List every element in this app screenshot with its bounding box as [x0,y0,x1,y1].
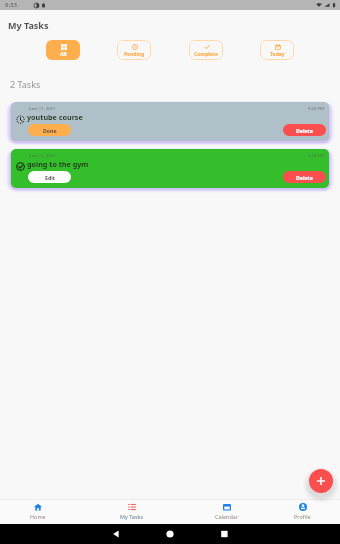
button[interactable]: Done [28,124,71,136]
staticText: Edit [45,174,55,181]
staticText: 9:32 PM [308,106,324,112]
staticText: My Tasks [8,19,49,31]
button[interactable]: June 11, 2021 [11,149,329,188]
button[interactable]: Profile [280,499,324,524]
staticText: Done [43,127,57,134]
button[interactable]: June 11, 2021 [11,102,329,141]
button[interactable]: Calendar [205,499,249,524]
staticText: June 11, 2021 [29,153,56,159]
staticText: going to the gym [27,159,89,169]
staticText: Pending [124,51,145,58]
staticText: Today [270,51,285,58]
staticText: youtube course [27,112,83,122]
staticText: Complete [194,51,219,58]
staticText: 9:32 PM [308,153,324,159]
staticText: All [60,51,67,58]
staticText: My Tasks [120,513,144,520]
button[interactable]: Pending [117,40,151,60]
button[interactable]: Delete [283,124,326,136]
button[interactable]: Add task [309,469,333,493]
button[interactable]: Edit [28,171,71,183]
button[interactable]: My Tasks [110,499,154,524]
staticText: 9:33 [5,1,17,9]
staticText: June 11, 2021 [29,106,56,112]
staticText: Calendar [215,513,239,520]
button[interactable]: All [46,40,80,60]
staticText: Profile [294,513,311,520]
button[interactable]: Delete [283,171,326,183]
button[interactable]: Complete [189,40,223,60]
staticText: Delete [296,127,313,134]
button[interactable]: Today [260,40,294,60]
staticText: Home [30,513,46,520]
staticText: Delete [296,174,313,181]
button[interactable]: Home [16,499,60,524]
staticText: 2 Tasks [10,78,41,90]
